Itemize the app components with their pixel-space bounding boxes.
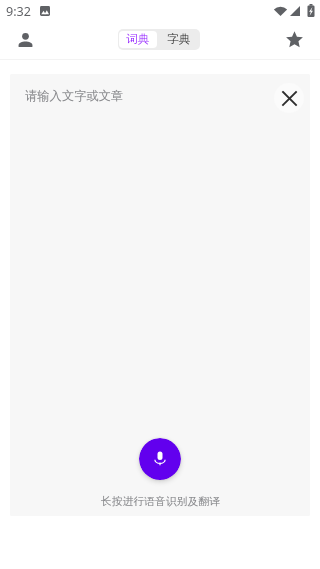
button[interactable]: Clear — [274, 83, 304, 113]
button[interactable]: Account — [9, 24, 41, 56]
button[interactable]: 字典 — [158, 29, 200, 50]
staticText: 长按进行语音识别及翻译 — [101, 495, 220, 509]
staticText: 字典 — [167, 32, 191, 47]
button[interactable]: 词典 — [119, 31, 157, 48]
staticText: 9:32 — [6, 3, 31, 20]
button[interactable]: Favorites — [278, 23, 310, 55]
staticText: 请输入文字或文章 — [25, 88, 124, 103]
button[interactable]: Voice input — [139, 438, 181, 480]
staticText: 词典 — [126, 32, 150, 47]
